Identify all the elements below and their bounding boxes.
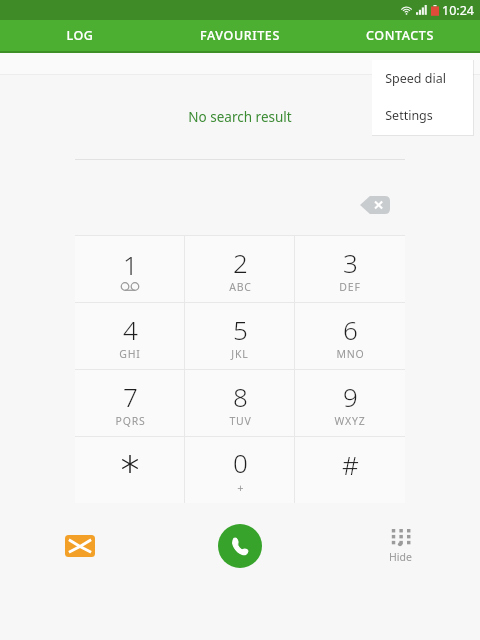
- button[interactable]: 2: [185, 236, 295, 302]
- staticText: 4: [123, 312, 138, 346]
- button[interactable]: [0, 53, 480, 74]
- staticText: 2: [233, 245, 248, 279]
- button[interactable]: LOG: [0, 20, 160, 51]
- staticText: PQRS: [115, 414, 146, 428]
- button[interactable]: CONTACTS: [320, 20, 480, 51]
- button[interactable]: 3: [295, 236, 405, 302]
- button[interactable]: #: [295, 437, 405, 503]
- staticText: Hide: [389, 550, 412, 564]
- button[interactable]: 9: [295, 370, 405, 436]
- staticText: DEF: [339, 280, 361, 294]
- button[interactable]: FAVOURITES: [160, 20, 320, 51]
- staticText: JKL: [231, 347, 249, 361]
- staticText: 0: [233, 445, 248, 479]
- button[interactable]: Call: [218, 524, 262, 568]
- staticText: 7: [123, 379, 138, 413]
- button[interactable]: Send message: [57, 523, 103, 569]
- staticText: 1: [123, 247, 138, 281]
- staticText: 10:24: [442, 2, 474, 19]
- staticText: TUV: [229, 414, 252, 428]
- button[interactable]: 1: [75, 236, 185, 302]
- staticText: LOG: [66, 27, 94, 44]
- button[interactable]: 4: [75, 303, 185, 369]
- staticText: Speed dial: [385, 70, 446, 87]
- button[interactable]: 8: [185, 370, 295, 436]
- staticText: 3: [343, 245, 358, 279]
- staticText: Settings: [385, 107, 433, 124]
- staticText: 8: [233, 379, 248, 413]
- staticText: ABC: [229, 280, 252, 294]
- button[interactable]: 6: [295, 303, 405, 369]
- staticText: 5: [233, 312, 248, 346]
- staticText: +: [237, 480, 244, 495]
- staticText: No search result: [188, 108, 292, 126]
- button[interactable]: 5: [185, 303, 295, 369]
- button[interactable]: Speed dial: [372, 60, 473, 97]
- button[interactable]: 0: [185, 437, 295, 503]
- button[interactable]: 7: [75, 370, 185, 436]
- button[interactable]: Hide: [373, 528, 427, 564]
- staticText: CONTACTS: [366, 27, 434, 44]
- staticText: GHI: [119, 347, 141, 361]
- staticText: 6: [343, 312, 358, 346]
- staticText: WXYZ: [334, 414, 366, 428]
- button[interactable]: [75, 437, 185, 503]
- staticText: #: [342, 447, 359, 481]
- staticText: 9: [343, 379, 358, 413]
- staticText: MNO: [336, 347, 365, 361]
- staticText: FAVOURITES: [200, 27, 280, 44]
- button[interactable]: Settings: [372, 97, 473, 134]
- button[interactable]: Backspace: [357, 190, 393, 220]
